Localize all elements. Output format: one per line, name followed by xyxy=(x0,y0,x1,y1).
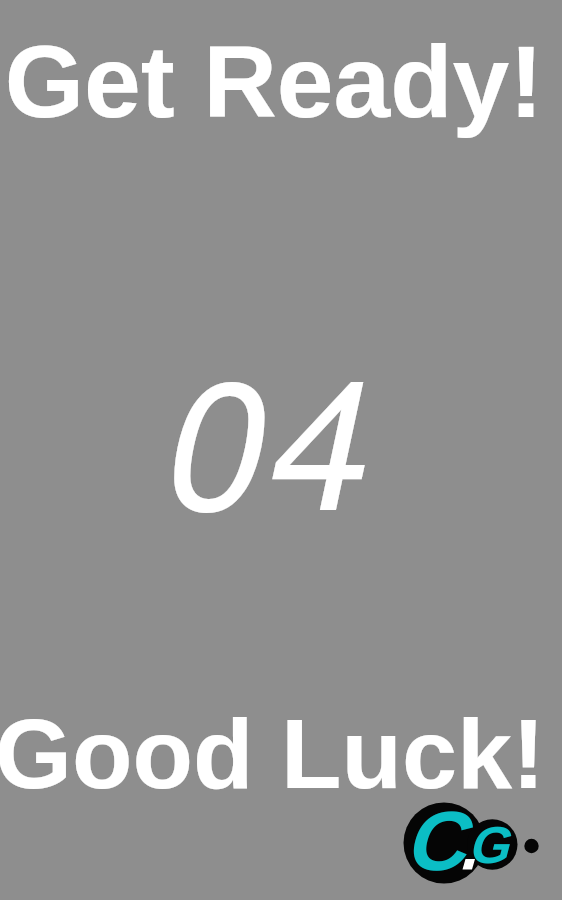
staticText: Get Ready! xyxy=(0,25,555,139)
staticText: 04 xyxy=(0,306,551,561)
button[interactable]: C.G Games logo xyxy=(398,798,548,893)
staticText: Good Luck! xyxy=(0,698,551,809)
